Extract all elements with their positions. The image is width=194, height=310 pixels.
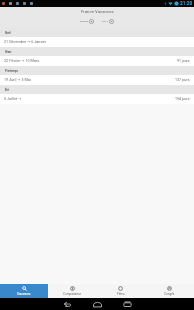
staticText: France Vacances: [81, 9, 114, 14]
button[interactable]: Congés: [145, 284, 194, 298]
staticText: 22 Février → 10 Mars: [4, 59, 40, 63]
staticText: Fêtes: [117, 292, 125, 296]
button[interactable]: 21 Décembre → 6 Janvier: [0, 37, 194, 47]
button[interactable]: Zone B: [80, 19, 94, 24]
button[interactable]: 22 Février → 10 Mars: [0, 56, 194, 66]
button[interactable]: Fêtes: [96, 284, 145, 298]
button[interactable]: 5 Juillet →: [0, 94, 194, 104]
staticText: Hiver: [5, 50, 12, 53]
staticText: Zone B: [80, 20, 88, 23]
staticText: 2014: [102, 20, 108, 23]
staticText: Été: [5, 88, 10, 91]
staticText: Comparateur: [63, 292, 81, 296]
staticText: Printemps: [5, 69, 19, 72]
button[interactable]: Back: [52, 298, 82, 310]
staticText: 137 jours: [175, 78, 190, 82]
button[interactable]: Vacances: [0, 284, 48, 298]
button[interactable]: Comparateur: [48, 284, 96, 298]
staticText: Congés: [164, 292, 175, 296]
button[interactable]: 19 Avril → 5 Mai: [0, 75, 194, 85]
staticText: 194 jours: [175, 97, 190, 101]
staticText: 21:20: [180, 1, 193, 7]
button[interactable]: 2014: [102, 19, 114, 24]
staticText: 91 jours: [177, 59, 190, 63]
staticText: 21 Décembre → 6 Janvier: [4, 40, 47, 44]
staticText: 19 Avril → 5 Mai: [4, 78, 31, 82]
staticText: Vacances: [17, 292, 31, 296]
button[interactable]: Home: [82, 298, 112, 310]
staticText: Noël: [5, 31, 11, 34]
staticText: 5 Juillet →: [4, 97, 22, 101]
button[interactable]: Recents: [112, 298, 142, 310]
